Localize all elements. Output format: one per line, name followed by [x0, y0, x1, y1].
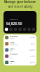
button[interactable]: Action 3: [14, 28, 17, 31]
staticText: and recent activity: [8, 5, 32, 8]
staticText: Yesterday: [10, 44, 18, 46]
button[interactable]: Action 5: [23, 28, 26, 31]
button[interactable]: Coffee: [3, 41, 36, 47]
staticText: Manage your balance: [4, 0, 36, 4]
staticText: Groceries: [10, 36, 18, 37]
button[interactable]: Action 4: [18, 28, 22, 31]
staticText: Coffee: [10, 42, 15, 44]
staticText: -$12.00: [30, 55, 35, 57]
staticText: Total balance: [9, 18, 18, 20]
button[interactable]: Utilities: [3, 59, 36, 65]
staticText: +$2,400: [29, 49, 35, 51]
button[interactable]: Action 6: [27, 28, 31, 31]
staticText: Transport: [10, 53, 18, 57]
staticText: Utilities: [10, 60, 15, 62]
staticText: Sat: [10, 62, 12, 64]
staticText: -$24.80: [30, 37, 35, 38]
staticText: Mon: [10, 50, 13, 52]
staticText: -$5.20: [31, 43, 35, 45]
staticText: $4,820.50: [6, 21, 22, 26]
staticText: -$88.10: [30, 61, 35, 63]
staticText: Salary: [10, 48, 15, 50]
button[interactable]: Transport: [3, 53, 36, 59]
staticText: Today: [10, 38, 15, 39]
button[interactable]: Groceries: [3, 34, 36, 41]
button[interactable]: Action 2: [9, 28, 13, 31]
button[interactable]: Salary: [3, 47, 36, 53]
staticText: Sun: [10, 57, 13, 59]
button[interactable]: Action 7: [32, 28, 35, 31]
button[interactable]: Action 1: [5, 28, 8, 31]
